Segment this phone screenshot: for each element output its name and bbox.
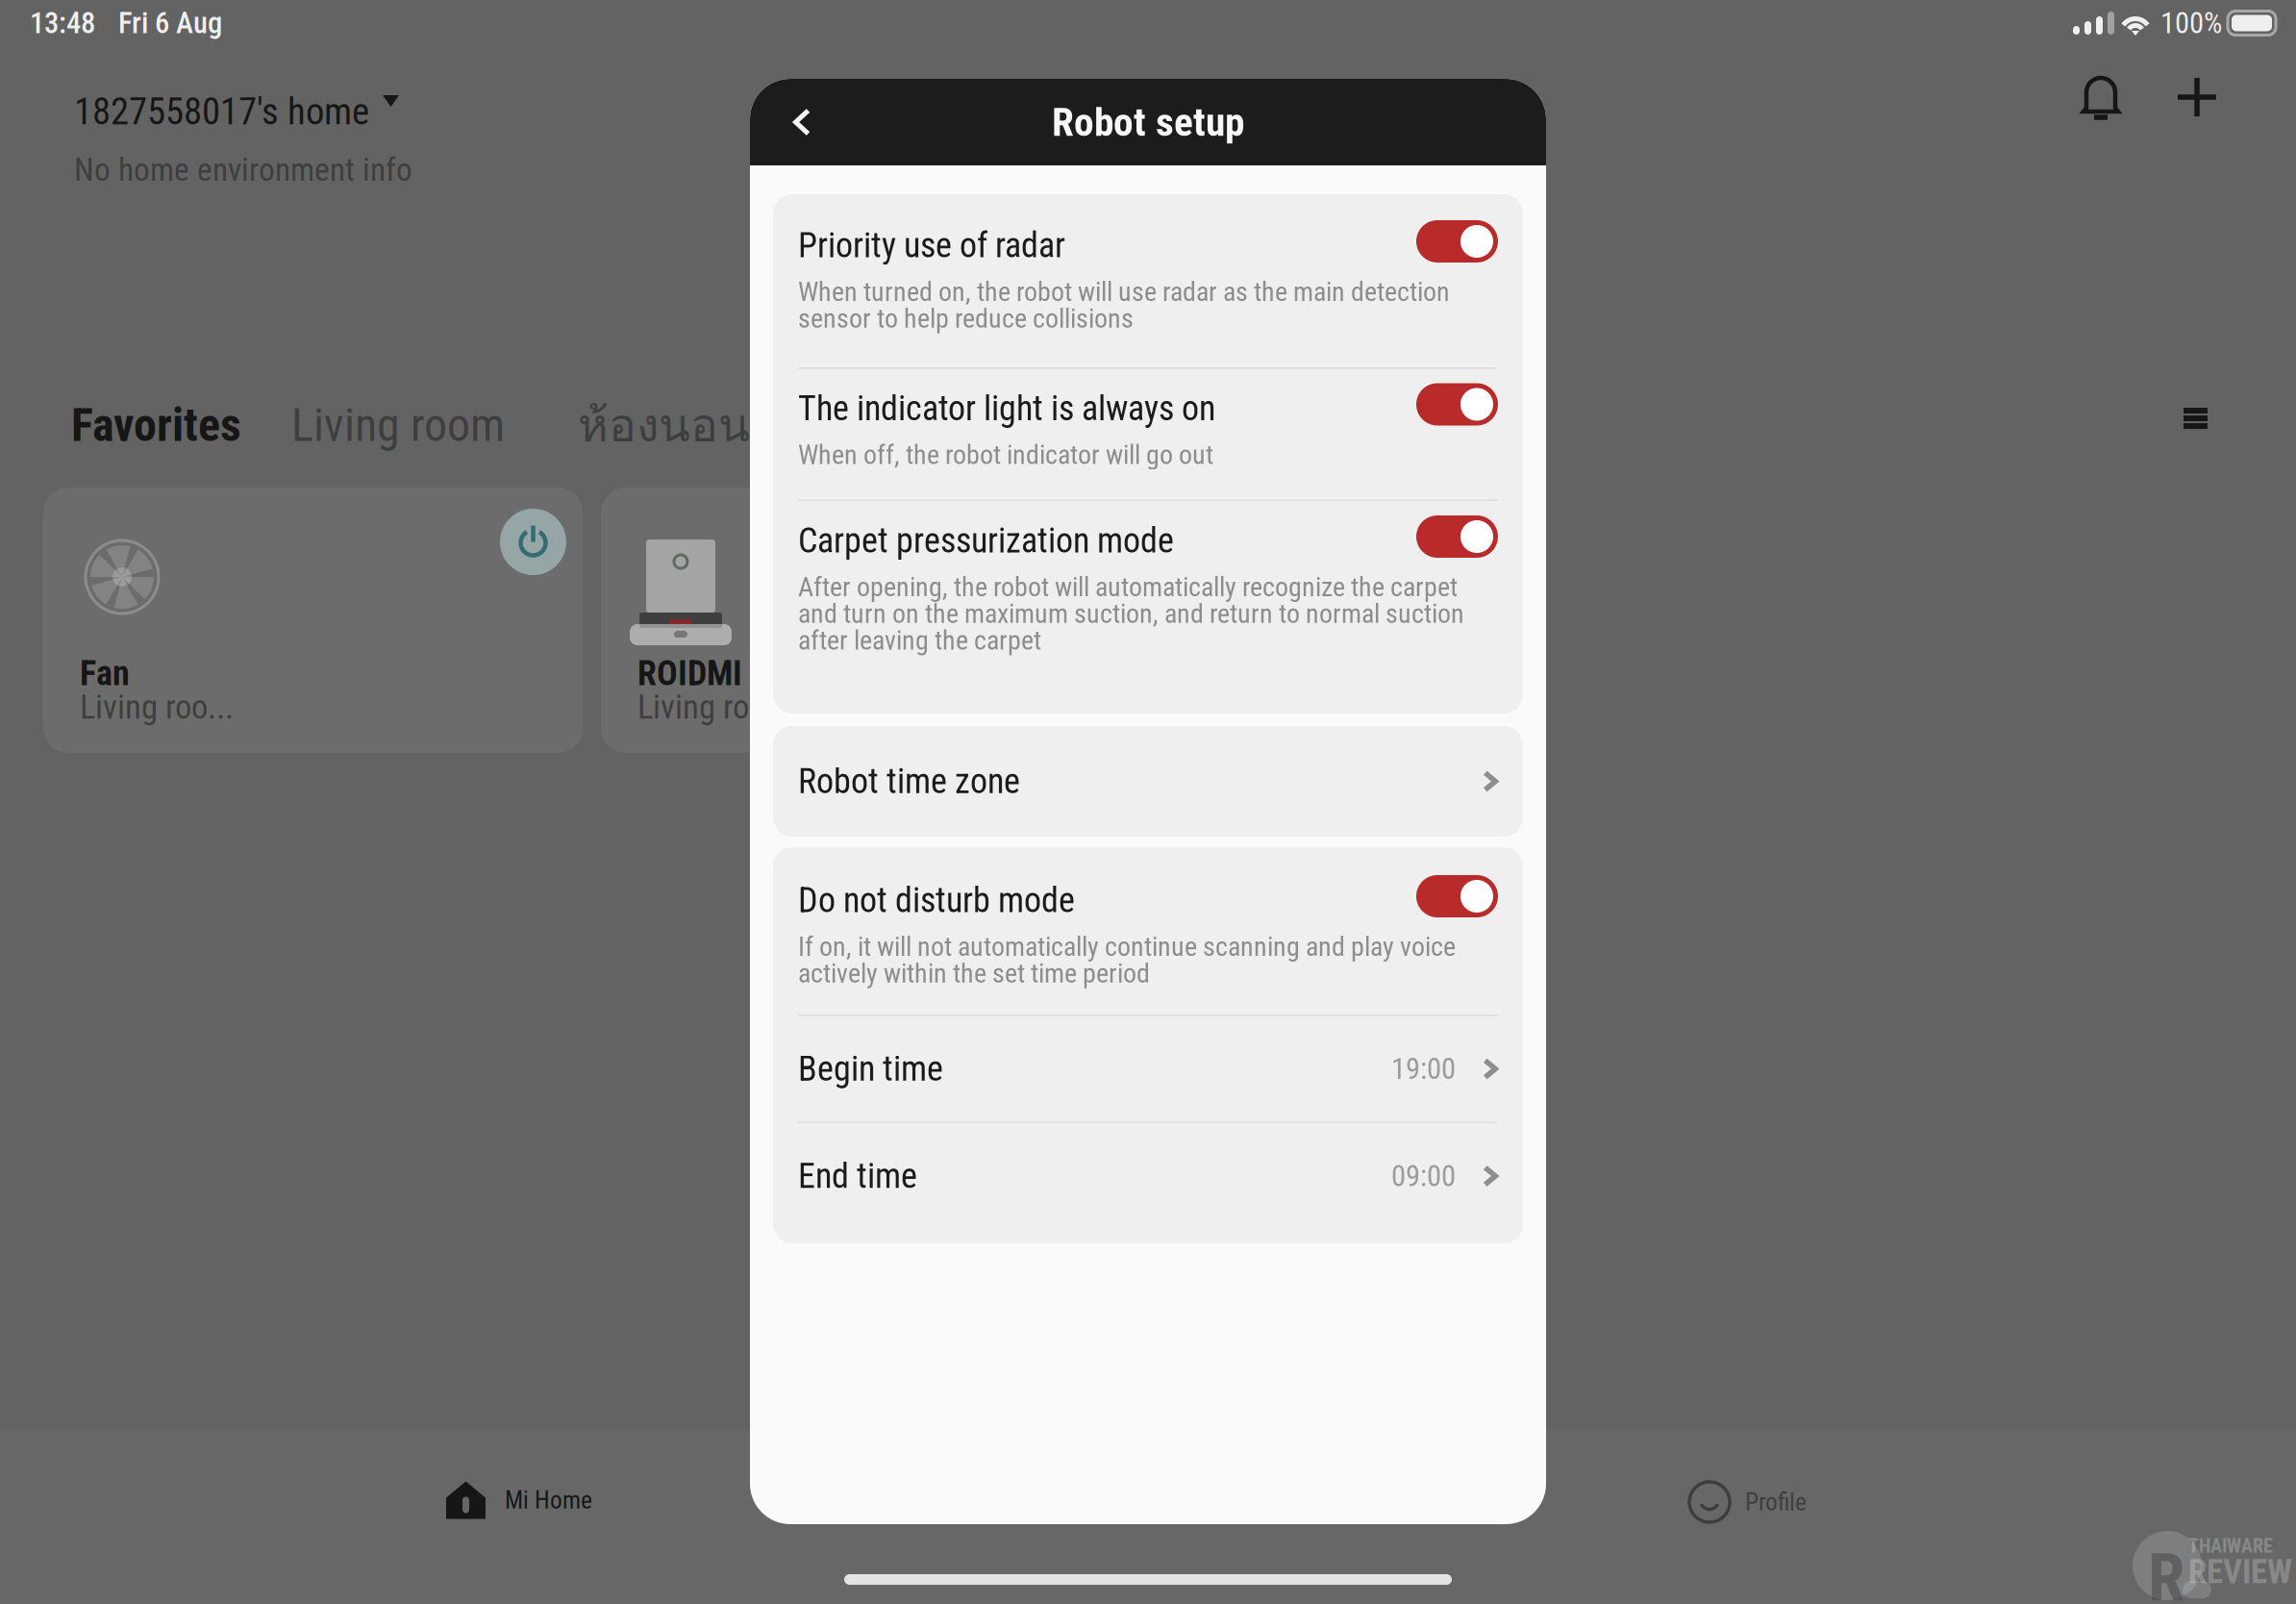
button[interactable]: End time	[798, 1123, 1498, 1229]
staticText: Living roo.	[637, 688, 774, 727]
staticText: Carpet pressurization mode	[798, 520, 1174, 561]
staticText: Living room	[291, 398, 505, 452]
button[interactable]: The indicator light is always on	[1416, 383, 1498, 426]
staticText: Fri 6 Aug	[118, 6, 222, 40]
staticText: No home environment info	[74, 151, 412, 189]
staticText: Favorites	[71, 398, 241, 452]
staticText: Mi Home	[505, 1486, 592, 1514]
staticText: End time	[798, 1156, 917, 1196]
button[interactable]: Mi Home	[445, 1462, 686, 1539]
staticText: 09:00	[1391, 1159, 1456, 1193]
staticText: THAIWARE	[2188, 1535, 2273, 1557]
staticText: 1827558017's home	[74, 90, 369, 133]
button[interactable]: Robot time zone	[798, 726, 1498, 837]
staticText: 19:00	[1391, 1052, 1456, 1086]
staticText: When turned on, the robot will use radar…	[798, 276, 1450, 334]
staticText: Fan	[80, 653, 130, 694]
staticText: 100%	[2160, 6, 2222, 40]
button[interactable]: Add device	[2163, 63, 2231, 131]
button[interactable]: ROIDMI E	[601, 488, 1140, 753]
staticText: 13:48	[30, 6, 95, 40]
button[interactable]: Fan	[43, 488, 583, 753]
button[interactable]: Priority use of radar	[1416, 220, 1498, 263]
staticText: Living roo...	[80, 688, 234, 727]
staticText: After opening, the robot will automatica…	[798, 571, 1464, 656]
button[interactable]: Profile	[1689, 1464, 1930, 1541]
staticText: Do not disturb mode	[798, 880, 1075, 920]
staticText: The indicator light is always on	[798, 388, 1215, 429]
button[interactable]: ห้องนอน	[578, 388, 750, 462]
staticText: Begin time	[798, 1049, 943, 1089]
staticText: Profile	[1745, 1488, 1807, 1516]
staticText: When off, the robot indicator will go ou…	[798, 439, 1213, 471]
staticText: Robot time zone	[798, 761, 1020, 802]
button[interactable]: Carpet pressurization mode	[1416, 515, 1498, 558]
staticText: If on, it will not automatically continu…	[798, 931, 1456, 989]
staticText: R	[2148, 1539, 2184, 1604]
button[interactable]: Living room	[291, 398, 505, 452]
staticText: REVIEW	[2188, 1552, 2292, 1591]
staticText: ห้องนอน	[578, 388, 750, 462]
button[interactable]: Favorites	[71, 398, 241, 452]
button[interactable]: Back	[761, 79, 842, 165]
button[interactable]: Begin time	[798, 1016, 1498, 1122]
staticText: Robot setup	[1052, 99, 1244, 145]
button[interactable]: Do not disturb mode	[1416, 875, 1498, 917]
staticText: Priority use of radar	[798, 225, 1065, 266]
staticText: ROIDMI E	[637, 653, 767, 694]
button[interactable]: Notifications	[2067, 63, 2134, 131]
button[interactable]: List view	[2181, 408, 2210, 429]
button[interactable]: 1827558017's home	[74, 91, 399, 132]
